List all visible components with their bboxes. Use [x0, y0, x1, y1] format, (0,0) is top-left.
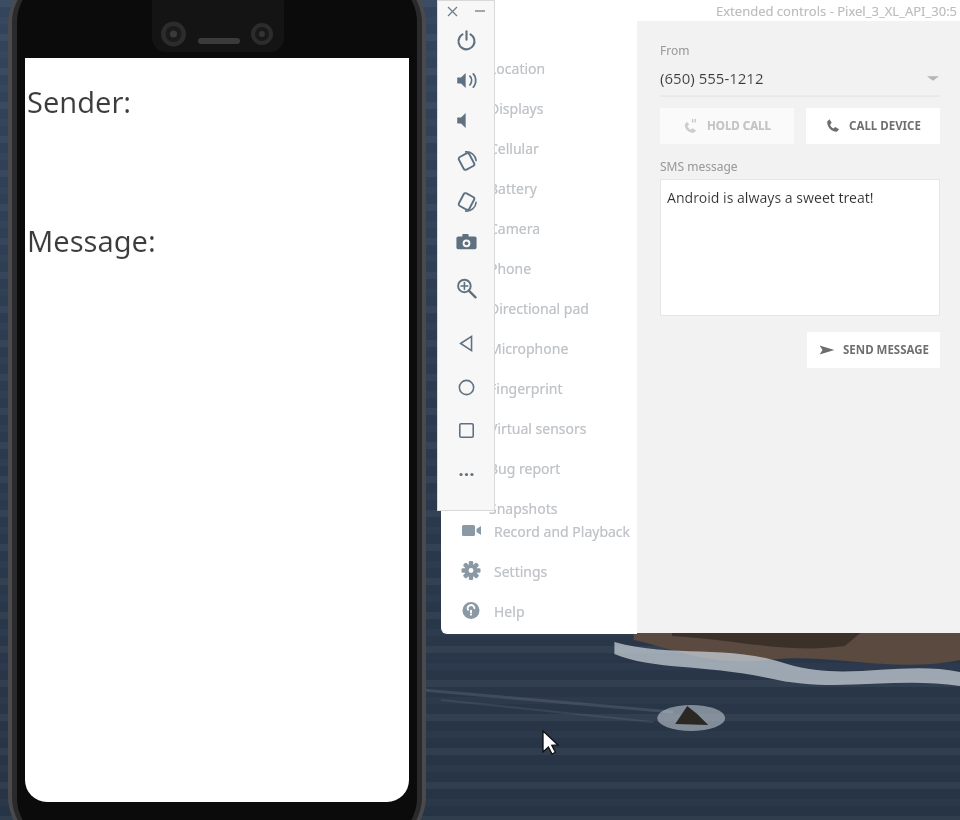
button[interactable]: Cellular	[441, 128, 637, 168]
button[interactable]: Volume down	[450, 104, 482, 136]
other: Open phone number dropdown	[926, 71, 940, 85]
button[interactable]: Back	[450, 327, 482, 359]
staticText: SEND MESSAGE	[843, 342, 929, 358]
staticText: Camera	[489, 219, 541, 238]
button[interactable]: Record and Playback	[441, 511, 637, 551]
staticText: From	[660, 42, 690, 58]
staticText: Android is always a sweet treat!	[667, 188, 874, 207]
button[interactable]: Microphone	[441, 328, 637, 368]
staticText: Battery	[489, 179, 537, 198]
button[interactable]: Take screenshot	[450, 226, 482, 258]
staticText: Sender:	[27, 82, 132, 121]
button[interactable]: HOLD CALL	[660, 108, 794, 144]
staticText: Message:	[27, 221, 156, 260]
button[interactable]: Overview	[450, 414, 482, 446]
staticText: Settings	[494, 562, 548, 581]
button[interactable]: (650) 555-1212	[660, 64, 940, 92]
staticText: Fingerprint	[489, 379, 563, 398]
staticText: Extended controls - Pixel_3_XL_API_30:5	[716, 2, 958, 20]
button[interactable]: Location	[441, 48, 637, 88]
staticText: Snapshots	[489, 499, 558, 518]
button[interactable]: Zoom	[450, 272, 482, 304]
button[interactable]: Directional pad	[441, 288, 637, 328]
button[interactable]: Rotate left	[450, 145, 482, 177]
button[interactable]: Help	[441, 591, 637, 631]
staticText: Bug report	[489, 459, 561, 478]
button[interactable]: Volume up	[450, 64, 482, 96]
button[interactable]: CALL DEVICE	[806, 108, 940, 144]
button[interactable]: Home	[450, 371, 482, 403]
button[interactable]: Rotate right	[450, 185, 482, 217]
button[interactable]: Fingerprint	[441, 368, 637, 408]
button[interactable]: Bug report	[441, 448, 637, 488]
button[interactable]: Snapshots	[441, 488, 637, 528]
staticText: CALL DEVICE	[849, 118, 921, 134]
button[interactable]: Minimize	[471, 2, 489, 20]
button[interactable]: Android is always a sweet treat!	[660, 179, 940, 316]
staticText: Record and Playback	[494, 522, 631, 541]
button[interactable]: Power	[450, 24, 482, 56]
button[interactable]: Virtual sensors	[441, 408, 637, 448]
button[interactable]: Close	[443, 2, 461, 20]
staticText: Phone	[489, 259, 532, 278]
staticText: SMS message	[660, 158, 738, 174]
staticText: Help	[494, 602, 525, 621]
staticText: Virtual sensors	[489, 419, 587, 438]
staticText: HOLD CALL	[707, 118, 771, 134]
button[interactable]: Settings	[441, 551, 637, 591]
button[interactable]: SEND MESSAGE	[807, 332, 940, 368]
staticText: Microphone	[489, 339, 569, 358]
button[interactable]: Phone	[441, 248, 637, 288]
button[interactable]: Battery	[441, 168, 637, 208]
staticText: Location	[489, 59, 546, 78]
button[interactable]: More	[450, 458, 482, 490]
button[interactable]: Camera	[441, 208, 637, 248]
staticText: Displays	[489, 99, 544, 118]
staticText: Directional pad	[489, 299, 589, 318]
staticText: (650) 555-1212	[660, 68, 764, 88]
button[interactable]: Displays	[441, 88, 637, 128]
staticText: Cellular	[489, 139, 539, 158]
